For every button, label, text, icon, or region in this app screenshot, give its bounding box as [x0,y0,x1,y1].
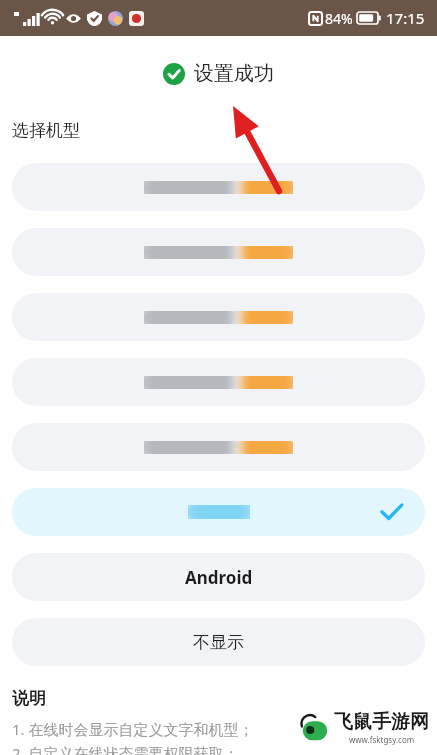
staticText: 设置成功 [194,61,274,86]
staticText: 2. 自定义在线状态需要权限获取； [12,743,239,755]
staticText: 84% [325,9,353,28]
button[interactable]: 已选中 [12,488,425,536]
staticText: 1. 在线时会显示自定义文字和机型； [12,719,254,739]
staticText: 17:15 [386,8,425,28]
button[interactable]: 设置成功 [3,42,434,104]
button[interactable]: 不显示 [12,618,425,666]
staticText: 飞鼠手游网 [334,710,429,734]
button[interactable] [12,228,425,276]
button[interactable]: Android [12,553,425,601]
staticText: 选择机型 [12,120,80,141]
button[interactable] [12,293,425,341]
button[interactable] [12,423,425,471]
staticText: 不显示 [193,632,244,653]
staticText: Android [185,566,253,589]
button[interactable] [12,163,425,211]
button[interactable] [12,358,425,406]
other: 已选中 [380,501,403,524]
staticText: 说明 [12,688,46,709]
staticText: www.fsktgsy.com [349,734,415,745]
